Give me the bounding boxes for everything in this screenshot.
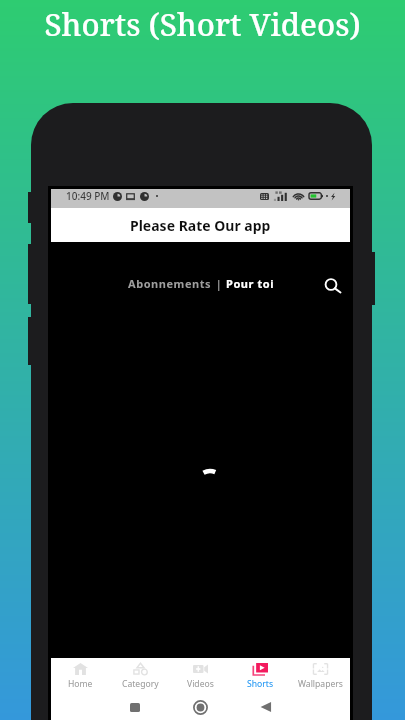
staticText: Shorts — [247, 678, 273, 690]
button[interactable]: Category — [110, 663, 170, 690]
button[interactable]: Pour toi — [225, 272, 275, 295]
button[interactable]: Search — [323, 277, 343, 297]
button[interactable]: Home — [178, 694, 222, 720]
button[interactable]: Please Rate Our app — [51, 208, 350, 242]
staticText: Videos — [187, 678, 214, 690]
button[interactable]: Back — [244, 694, 288, 720]
staticText: Home — [68, 678, 93, 690]
staticText: Category — [122, 678, 159, 690]
button[interactable]: Shorts — [230, 663, 290, 690]
staticText: Please Rate Our app — [130, 216, 271, 235]
button[interactable]: Abonnements — [127, 272, 213, 295]
staticText: | — [213, 276, 225, 291]
staticText: 10:49 PM — [66, 189, 110, 203]
button[interactable]: Recents — [113, 694, 157, 720]
button[interactable]: Home — [51, 663, 110, 690]
button[interactable]: Videos — [170, 663, 230, 690]
staticText: Shorts (Short Videos) — [44, 3, 361, 45]
button[interactable]: Wallpapers — [290, 663, 350, 690]
staticText: Pour toi — [226, 276, 274, 291]
staticText: Wallpapers — [298, 678, 343, 690]
staticText: Abonnements — [128, 276, 212, 291]
